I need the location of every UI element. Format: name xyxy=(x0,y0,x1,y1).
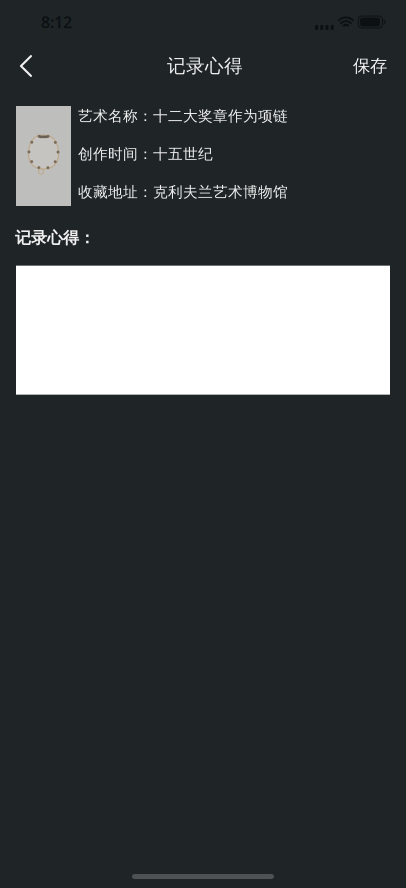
button[interactable]: Back xyxy=(0,44,46,88)
button[interactable]: 保存 xyxy=(337,44,406,88)
staticText: 记录心得： xyxy=(15,228,95,248)
staticText: 艺术名称：十二大奖章作为项链 xyxy=(78,107,288,125)
staticText: 记录心得 xyxy=(167,54,243,77)
staticText: 收藏地址：克利夫兰艺术博物馆 xyxy=(78,183,288,201)
button[interactable] xyxy=(16,266,390,395)
staticText: 保存 xyxy=(353,55,387,77)
staticText: 8:12 xyxy=(41,11,72,33)
staticText: 创作时间：十五世纪 xyxy=(78,145,213,163)
